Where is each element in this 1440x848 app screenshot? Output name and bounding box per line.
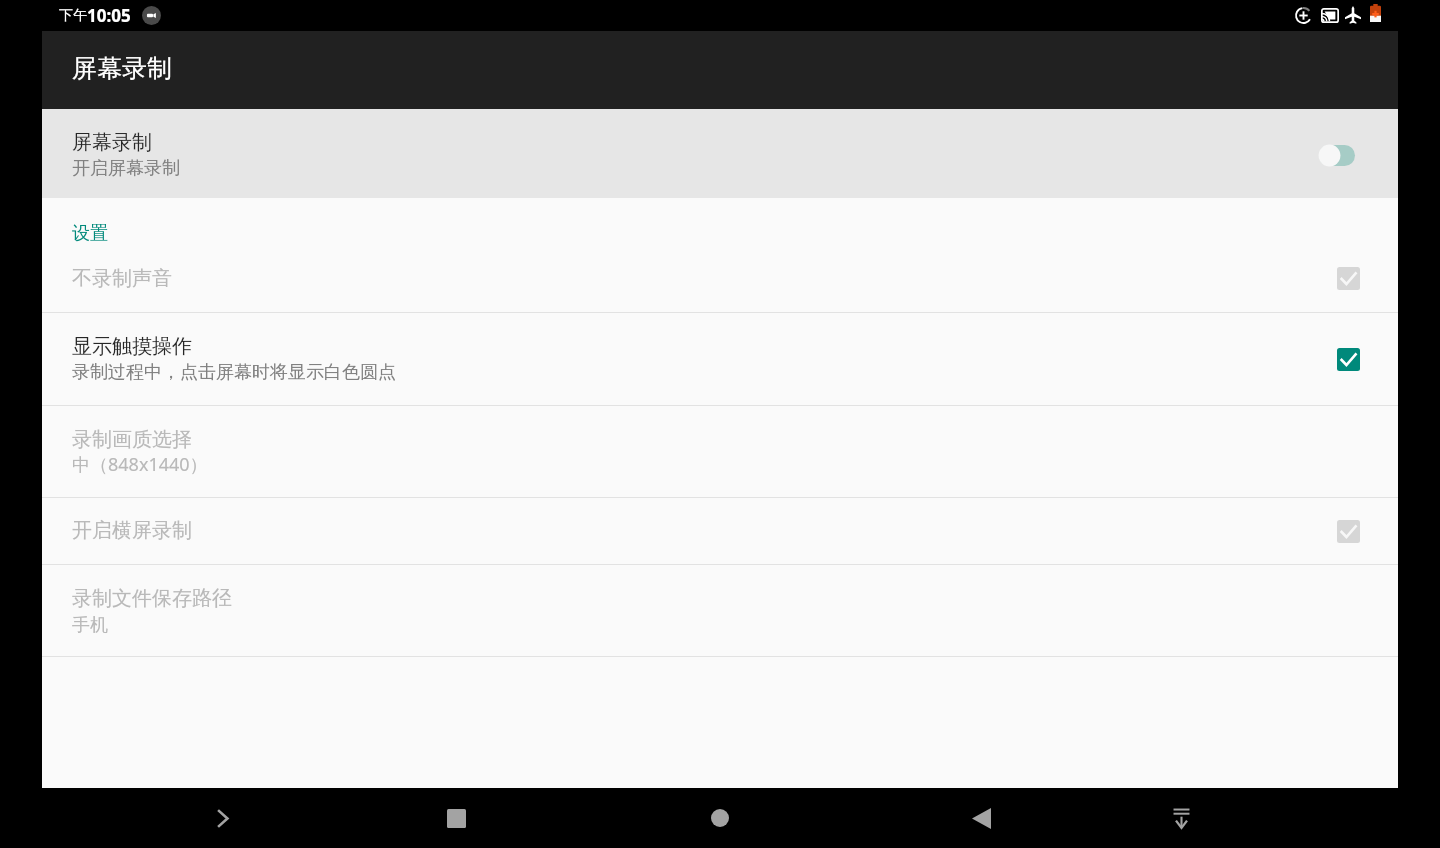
button[interactable]: Back	[951, 788, 1011, 848]
button[interactable]: 显示触摸操作	[42, 313, 1398, 405]
staticText: 不录制声音	[72, 266, 172, 291]
staticText: 开启屏幕录制	[72, 157, 180, 180]
staticText: 屏幕录制	[72, 53, 172, 84]
staticText: 录制文件保存路径	[72, 586, 232, 611]
button[interactable]: 录制文件保存路径	[42, 565, 1398, 656]
staticText: 开启横屏录制	[72, 518, 192, 543]
staticText: 显示触摸操作	[72, 334, 192, 359]
button[interactable]: Home	[690, 788, 750, 848]
button[interactable]: Hide keyboard	[1151, 788, 1211, 848]
staticText: 下午	[59, 7, 87, 25]
staticText: 10:05	[87, 4, 131, 27]
button[interactable]: Recents	[426, 788, 486, 848]
button[interactable]: 不录制声音	[42, 245, 1398, 312]
button[interactable]: 开启横屏录制	[42, 498, 1398, 564]
button[interactable]: Forward	[192, 788, 252, 848]
staticText: 屏幕录制	[72, 130, 152, 155]
staticText: 中（848x1440）	[72, 452, 208, 477]
button[interactable]: 屏幕录制	[42, 109, 1398, 198]
button[interactable]: 录制画质选择	[42, 406, 1398, 497]
staticText: 录制过程中，点击屏幕时将显示白色圆点	[72, 361, 396, 384]
staticText: 设置	[72, 222, 108, 245]
staticText: 手机	[72, 614, 108, 637]
staticText: 录制画质选择	[72, 427, 192, 452]
